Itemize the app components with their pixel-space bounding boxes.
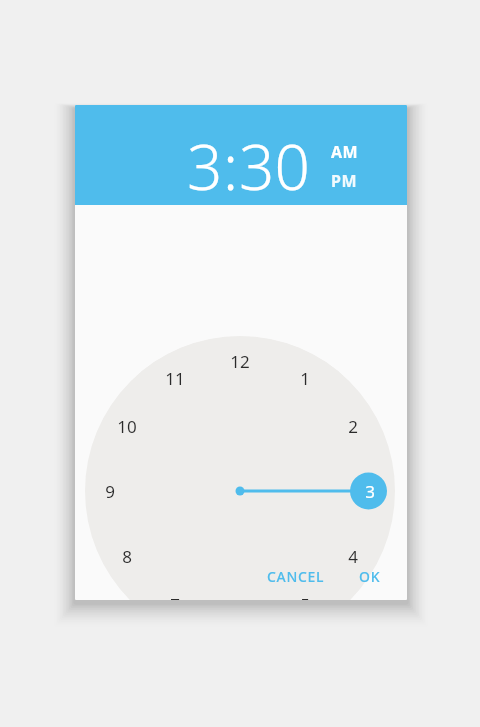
button[interactable]: AM [331,141,359,163]
button[interactable]: 1 [288,364,322,392]
staticText: PM [331,170,358,192]
button[interactable]: 5 [288,590,322,600]
button[interactable]: 30 [239,124,310,208]
staticText: 5 [300,593,310,600]
staticText: : [223,124,239,208]
button[interactable]: 3 [353,477,387,505]
staticText: 10 [117,415,137,438]
button[interactable]: 12 [223,347,257,375]
staticText: 3 [365,480,375,503]
button[interactable]: 11 [158,364,192,392]
staticText: 4 [348,545,358,568]
staticText: 2 [348,415,358,438]
staticText: OK [359,567,381,586]
button[interactable]: PM [331,170,358,192]
staticText: 7 [170,593,180,600]
button[interactable]: CANCEL [261,561,331,592]
staticText: 8 [122,545,132,568]
button[interactable]: 2 [336,412,370,440]
staticText: CANCEL [267,567,325,586]
button[interactable]: 9 [93,477,127,505]
button[interactable]: 4 [336,542,370,570]
staticText: 9 [105,480,115,503]
staticText: 11 [165,367,185,390]
button[interactable]: 3 [187,124,223,208]
button[interactable]: 7 [158,590,192,600]
button[interactable]: OK [353,561,387,592]
button[interactable]: 10 [110,412,144,440]
staticText: 12 [230,350,250,373]
staticText: AM [331,141,359,163]
button[interactable]: 8 [110,542,144,570]
staticText: 1 [300,367,310,390]
